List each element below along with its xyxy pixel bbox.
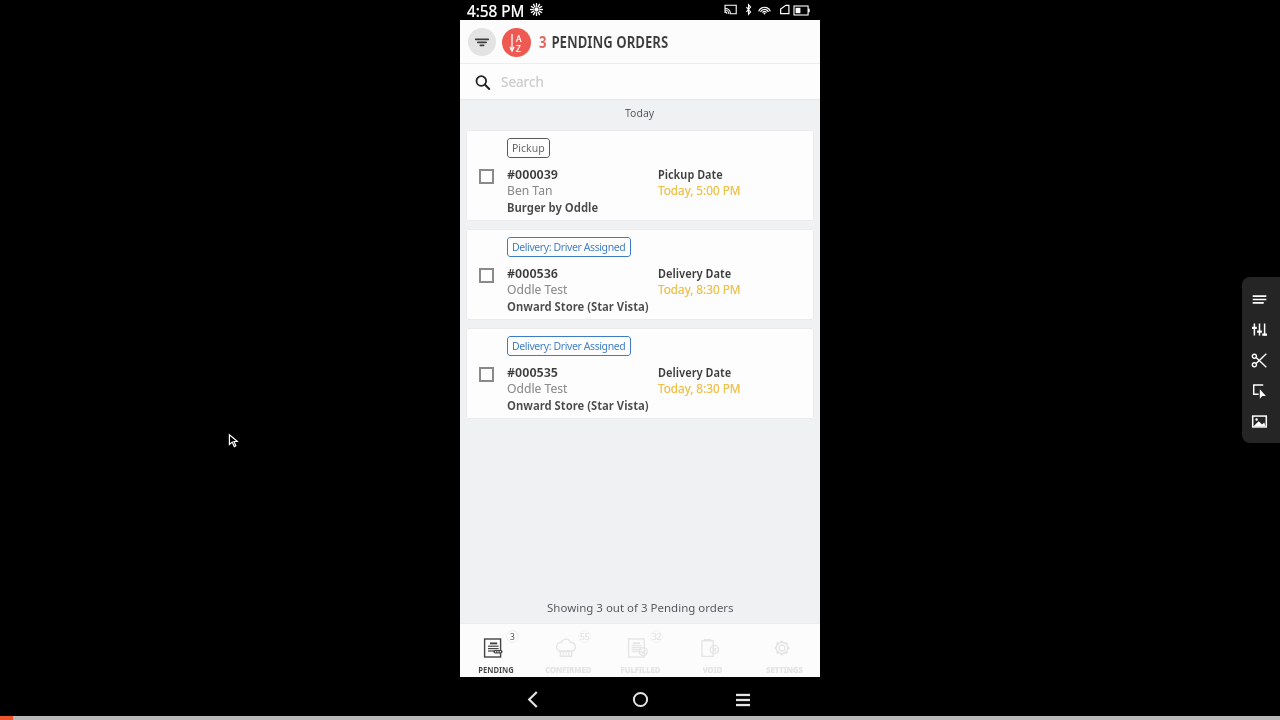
staticText: Today, 8:30 PM [658,281,741,298]
staticText: A [516,32,522,45]
staticText: 3 [539,31,547,53]
staticText: Delivery Date [658,265,732,282]
staticText: Oddle Test [507,281,568,298]
staticText: 55 [580,631,590,643]
button[interactable]: Home [620,677,660,716]
button[interactable]: Sort A to Z [502,28,531,57]
button[interactable]: Delivery: Driver Assigned [466,328,814,419]
staticText: Onward Store (Star Vista) [507,397,649,414]
button[interactable]: Select order #000536 [479,268,494,283]
staticText: PENDING ORDERS [551,31,669,53]
staticText: 3 [510,631,515,643]
button[interactable]: 3 [460,623,532,677]
staticText: PENDING [478,663,514,675]
staticText: Delivery Date [658,364,732,381]
staticText: Burger by Oddle [507,199,599,216]
button[interactable]: Menu [723,677,763,716]
button[interactable]: Back [513,677,553,716]
staticText: Z [516,42,521,55]
button[interactable]: VOID [676,623,748,677]
button[interactable]: Select order #000535 [479,367,494,382]
button[interactable]: 32 [604,623,676,677]
staticText: FULFILLED [620,663,660,675]
staticText: #000039 [507,166,558,183]
staticText: Ben Tan [507,182,553,199]
button[interactable]: Pickup [466,130,814,221]
staticText: 4:58 PM [467,0,525,19]
staticText: Showing 3 out of 3 Pending orders [547,600,734,616]
staticText: Search [501,73,544,91]
button[interactable]: Select order #000039 [479,169,494,184]
staticText: SETTINGS [766,663,803,675]
button[interactable]: Filter [468,28,496,56]
staticText: Pickup [512,141,545,155]
button[interactable]: SETTINGS [748,623,820,677]
staticText: Today, 5:00 PM [658,182,741,199]
button[interactable]: Delivery: Driver Assigned [512,240,626,254]
staticText: Onward Store (Star Vista) [507,298,649,315]
staticText: #000536 [507,265,558,282]
staticText: VOID [703,663,722,675]
button[interactable]: Delivery: Driver Assigned [512,339,626,353]
staticText: Today [625,106,655,120]
button[interactable]: Delivery: Driver Assigned [466,229,814,320]
button[interactable]: 55 [532,623,604,677]
staticText: Oddle Test [507,380,568,397]
staticText: Delivery: Driver Assigned [512,339,626,353]
staticText: Today, 8:30 PM [658,380,741,397]
button[interactable]: Pickup [512,141,545,155]
staticText: 32 [652,631,662,643]
staticText: Delivery: Driver Assigned [512,240,626,254]
staticText: CONFIRMED [545,663,592,675]
staticText: Pickup Date [658,166,723,183]
staticText: #000535 [507,364,558,381]
